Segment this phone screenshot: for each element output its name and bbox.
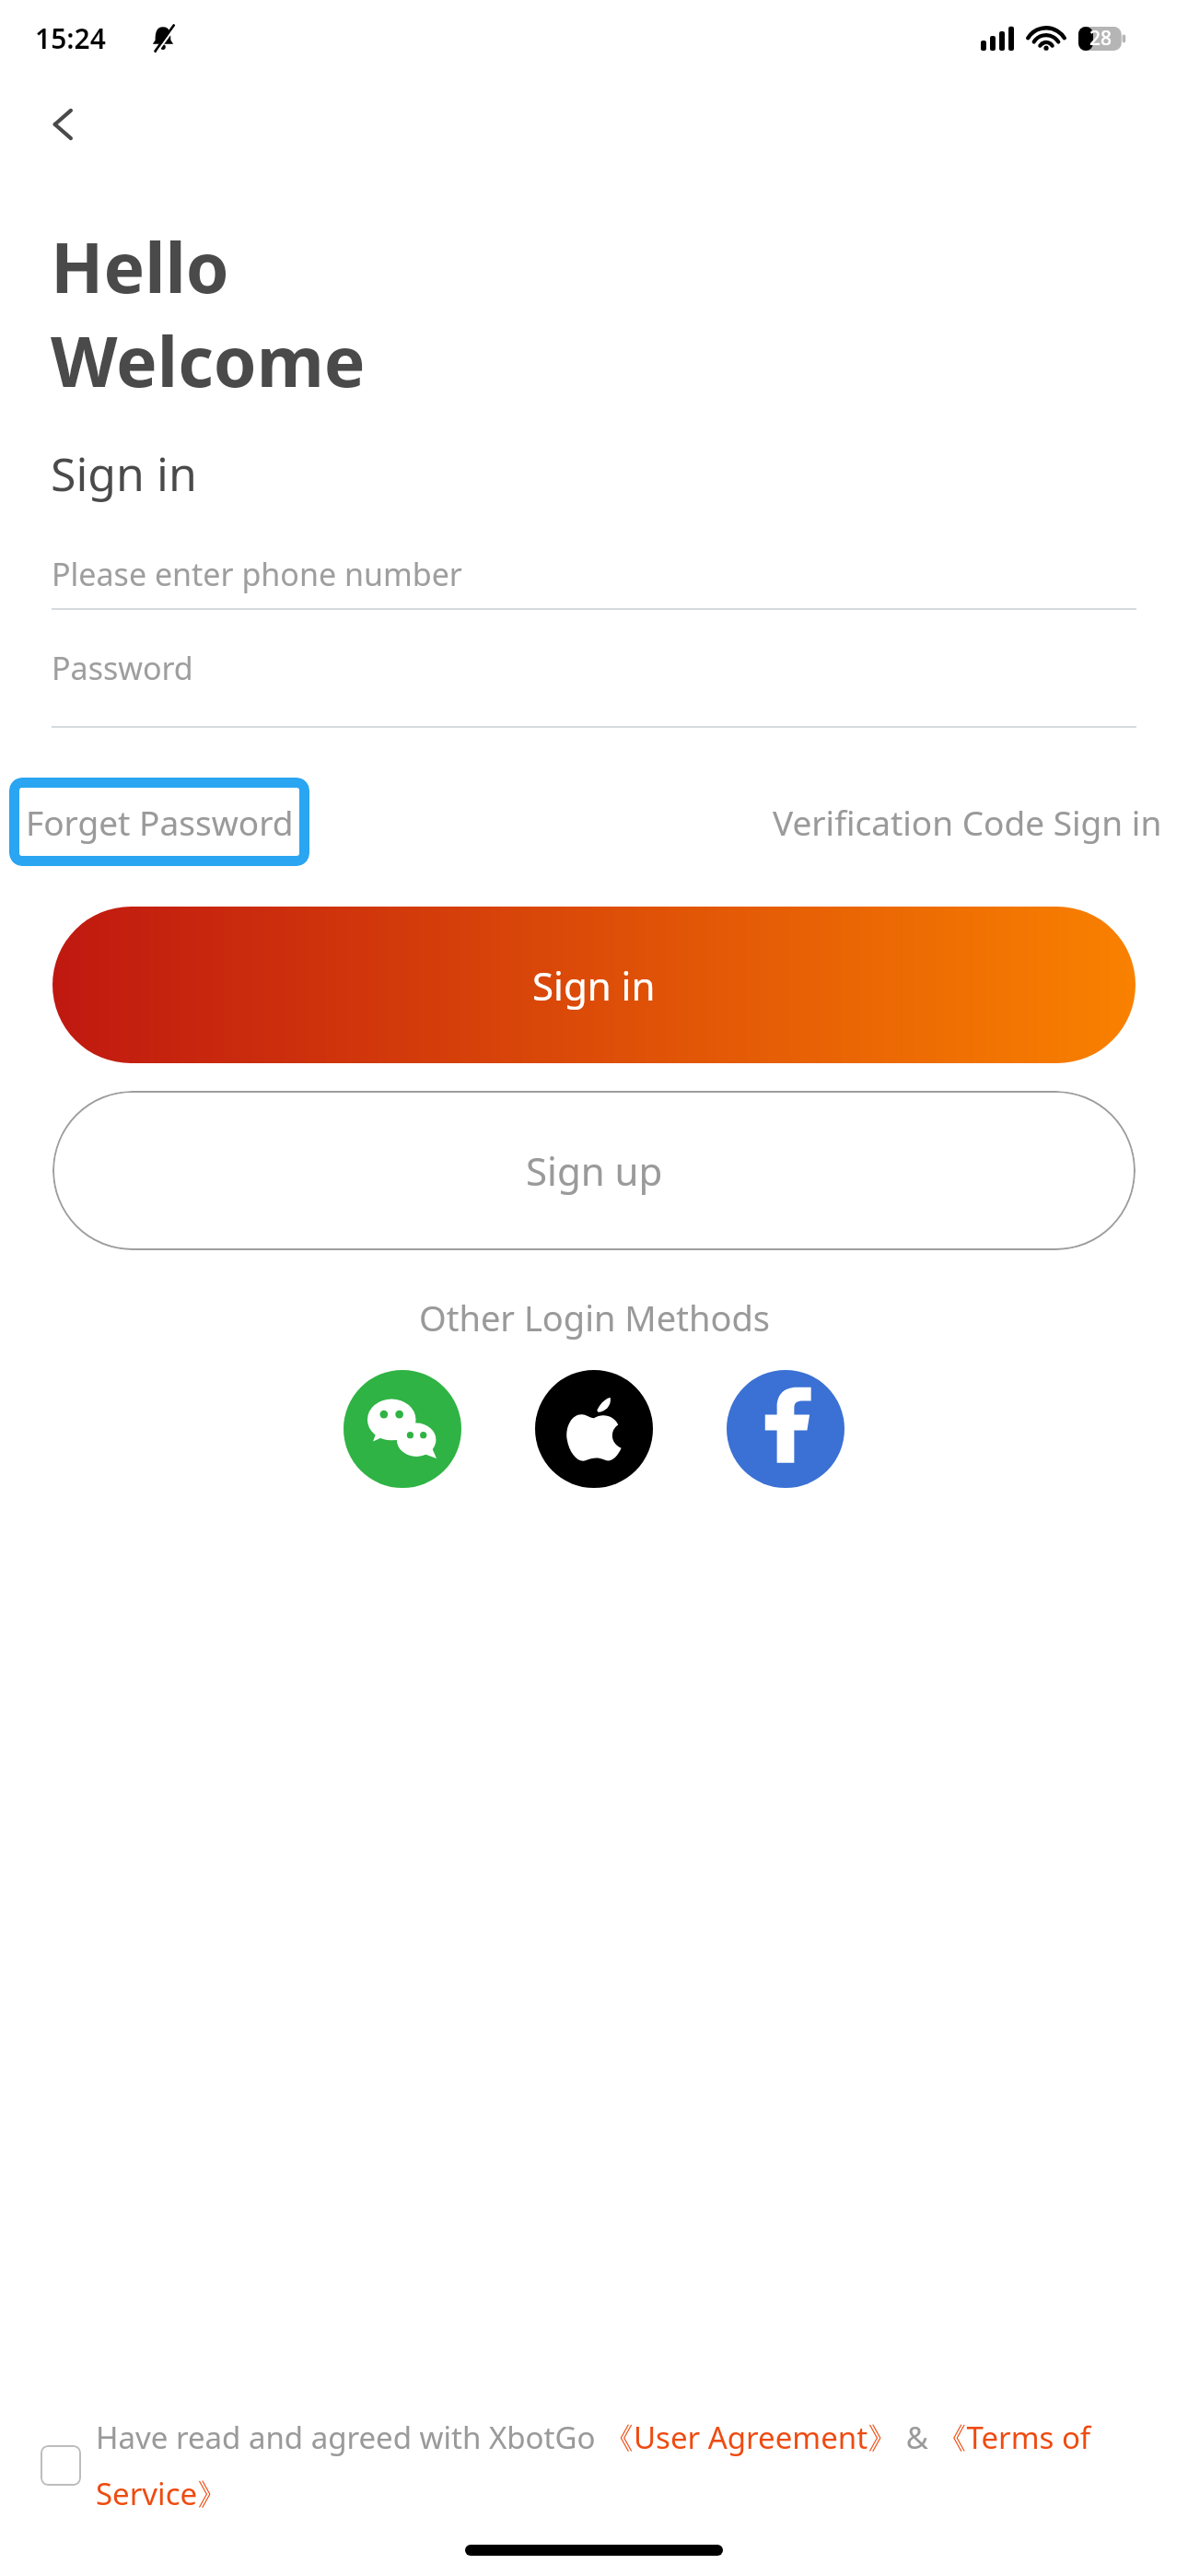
button[interactable]: Sign in with Apple — [535, 1370, 653, 1488]
button[interactable]: Please enter phone number — [52, 540, 1136, 610]
staticText: Hello — [51, 219, 229, 313]
button[interactable]: Sign in with WeChat — [344, 1370, 461, 1488]
button[interactable]: Forget Password — [9, 778, 309, 866]
staticText: Sign in — [532, 959, 656, 1012]
staticText: Other Login Methods — [419, 1294, 770, 1341]
staticText: Forget Password — [26, 799, 294, 845]
staticText: Verification Code Sign in — [773, 799, 1162, 845]
button[interactable]: Sign in — [52, 907, 1136, 1063]
button[interactable]: Sign up — [52, 1091, 1136, 1250]
staticText: Sign up — [526, 1144, 663, 1197]
staticText: Sign in — [51, 442, 197, 505]
button[interactable]: Sign in with Facebook — [727, 1370, 844, 1488]
staticText: 28 — [1089, 25, 1112, 52]
button[interactable]: Verification Code Sign in — [773, 799, 1162, 845]
button[interactable]: Agree to terms checkbox — [41, 2445, 81, 2486]
staticText: Welcome — [51, 313, 366, 407]
staticText: Please enter phone number — [52, 553, 462, 595]
button[interactable]: Password — [52, 610, 1136, 728]
button[interactable]: Back — [31, 92, 96, 157]
staticText: Password — [52, 647, 193, 689]
button[interactable]: Have read and agreed with XbotGo 《User A… — [96, 2417, 1160, 2513]
staticText: 15:24 — [35, 19, 106, 57]
